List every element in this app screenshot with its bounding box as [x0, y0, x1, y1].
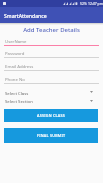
button[interactable]: Email Address: [0, 62, 103, 71]
button[interactable]: ASSIGN CLASS: [4, 109, 98, 122]
button[interactable]: Phone No: [0, 75, 103, 84]
button[interactable]: FINAL SUBMIT: [4, 128, 98, 143]
staticText: FINAL SUBMIT: [37, 133, 66, 138]
button[interactable]: UserName: [0, 37, 103, 46]
button[interactable]: Password: [0, 49, 103, 58]
staticText: Select Class: [5, 90, 29, 96]
button[interactable]: Select Section: [0, 97, 103, 105]
other: Open dropdown: [90, 100, 93, 102]
staticText: 52%: [80, 1, 87, 6]
staticText: Phone No: [5, 76, 25, 82]
other: Open dropdown: [90, 91, 93, 93]
staticText: UserName: [5, 38, 27, 44]
staticText: Add Teacher Details: [0, 26, 103, 34]
staticText: SmartAttendance: [4, 13, 47, 20]
staticText: ASSIGN CLASS: [37, 113, 66, 118]
staticText: 12:47 pm: [88, 1, 103, 6]
staticText: Select Section: [5, 98, 33, 104]
staticText: Password: [5, 50, 25, 56]
staticText: Email Address: [5, 63, 34, 69]
button[interactable]: Select Class: [0, 89, 103, 97]
